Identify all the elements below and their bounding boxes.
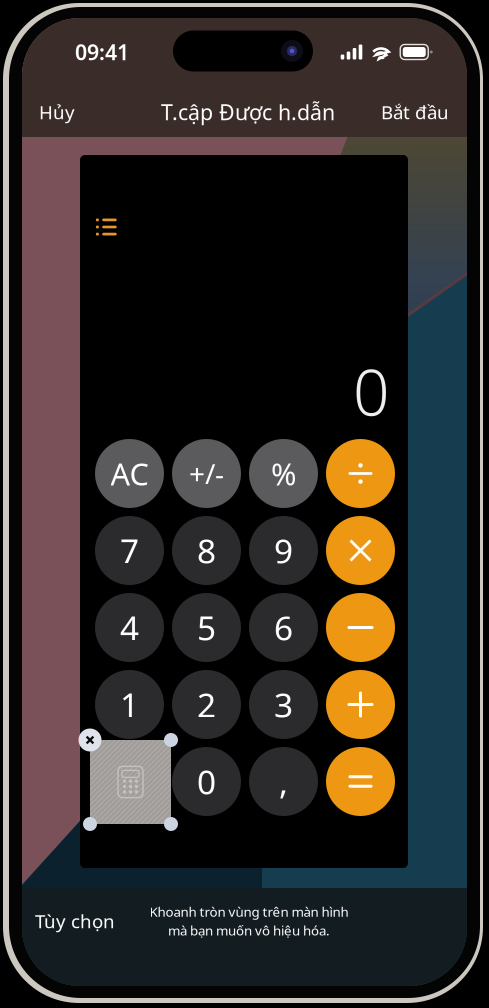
button[interactable]: 8	[172, 516, 241, 585]
button[interactable]: 6	[249, 593, 318, 662]
staticText: Hủy	[39, 100, 75, 124]
button[interactable]: AC	[95, 439, 164, 508]
staticText: 6	[274, 605, 293, 650]
staticText: AC	[110, 453, 148, 494]
staticText: 5	[197, 605, 216, 650]
staticText: 2	[197, 682, 216, 727]
button[interactable]: %	[249, 439, 318, 508]
button[interactable]: Hủy	[19, 91, 95, 133]
button[interactable]: Tùy chọn	[25, 901, 125, 941]
staticText: ,	[279, 759, 288, 804]
button[interactable]: ,	[249, 747, 318, 816]
button[interactable]: Remove region	[78, 728, 101, 751]
staticText: mà bạn muốn vô hiệu hóa.	[168, 921, 330, 939]
button[interactable]: Equals	[326, 747, 395, 816]
staticText: 09:41	[75, 38, 129, 66]
button[interactable]: +/-	[172, 439, 241, 508]
button[interactable]: 1	[95, 670, 164, 739]
staticText: +/-	[189, 455, 224, 492]
button[interactable]	[95, 747, 164, 816]
staticText: T.cập Được h.dẫn	[161, 98, 335, 126]
staticText: Khoanh tròn vùng trên màn hình	[149, 903, 348, 920]
button[interactable]: 3	[249, 670, 318, 739]
staticText: 7	[120, 528, 139, 573]
staticText: 3	[274, 682, 293, 727]
staticText: %	[271, 453, 296, 494]
staticText: 0	[197, 759, 216, 804]
button[interactable]: Divide	[326, 439, 395, 508]
button[interactable]: 9	[249, 516, 318, 585]
staticText: 9	[274, 528, 293, 573]
button[interactable]: 4	[95, 593, 164, 662]
staticText: 8	[197, 528, 216, 573]
staticText: 0	[353, 348, 390, 433]
button[interactable]: Add	[326, 670, 395, 739]
button[interactable]: 2	[172, 670, 241, 739]
button[interactable]: 7	[95, 516, 164, 585]
staticText: 4	[120, 605, 139, 650]
staticText: 1	[120, 682, 139, 727]
button[interactable]: Multiply	[326, 516, 395, 585]
staticText: Tùy chọn	[35, 909, 115, 933]
button[interactable]: 5	[172, 593, 241, 662]
button[interactable]: Bắt đầu	[368, 91, 462, 133]
button[interactable]: History	[96, 216, 130, 238]
button[interactable]: 0	[172, 747, 241, 816]
staticText: Bắt đầu	[381, 100, 449, 124]
button[interactable]: Subtract	[326, 593, 395, 662]
